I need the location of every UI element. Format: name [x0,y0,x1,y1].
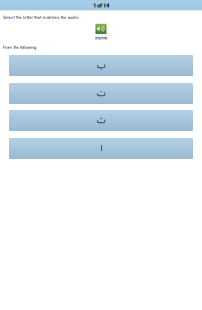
staticText: Select the letter that matches the audio… [3,15,79,20]
staticText: ا [100,139,102,158]
staticText: 1 of 14 [93,2,109,9]
staticText: ث [96,111,105,130]
button[interactable]: Beh [9,55,193,76]
button[interactable]: Repeat audio [86,24,116,40]
staticText: From the following: [3,45,37,50]
staticText: ب [96,56,105,75]
button[interactable]: Alef [9,138,193,159]
staticText: (repeat) [95,35,107,40]
staticText: ت [96,84,105,103]
button[interactable]: Theh [9,110,193,131]
button[interactable]: Teh [9,83,193,104]
